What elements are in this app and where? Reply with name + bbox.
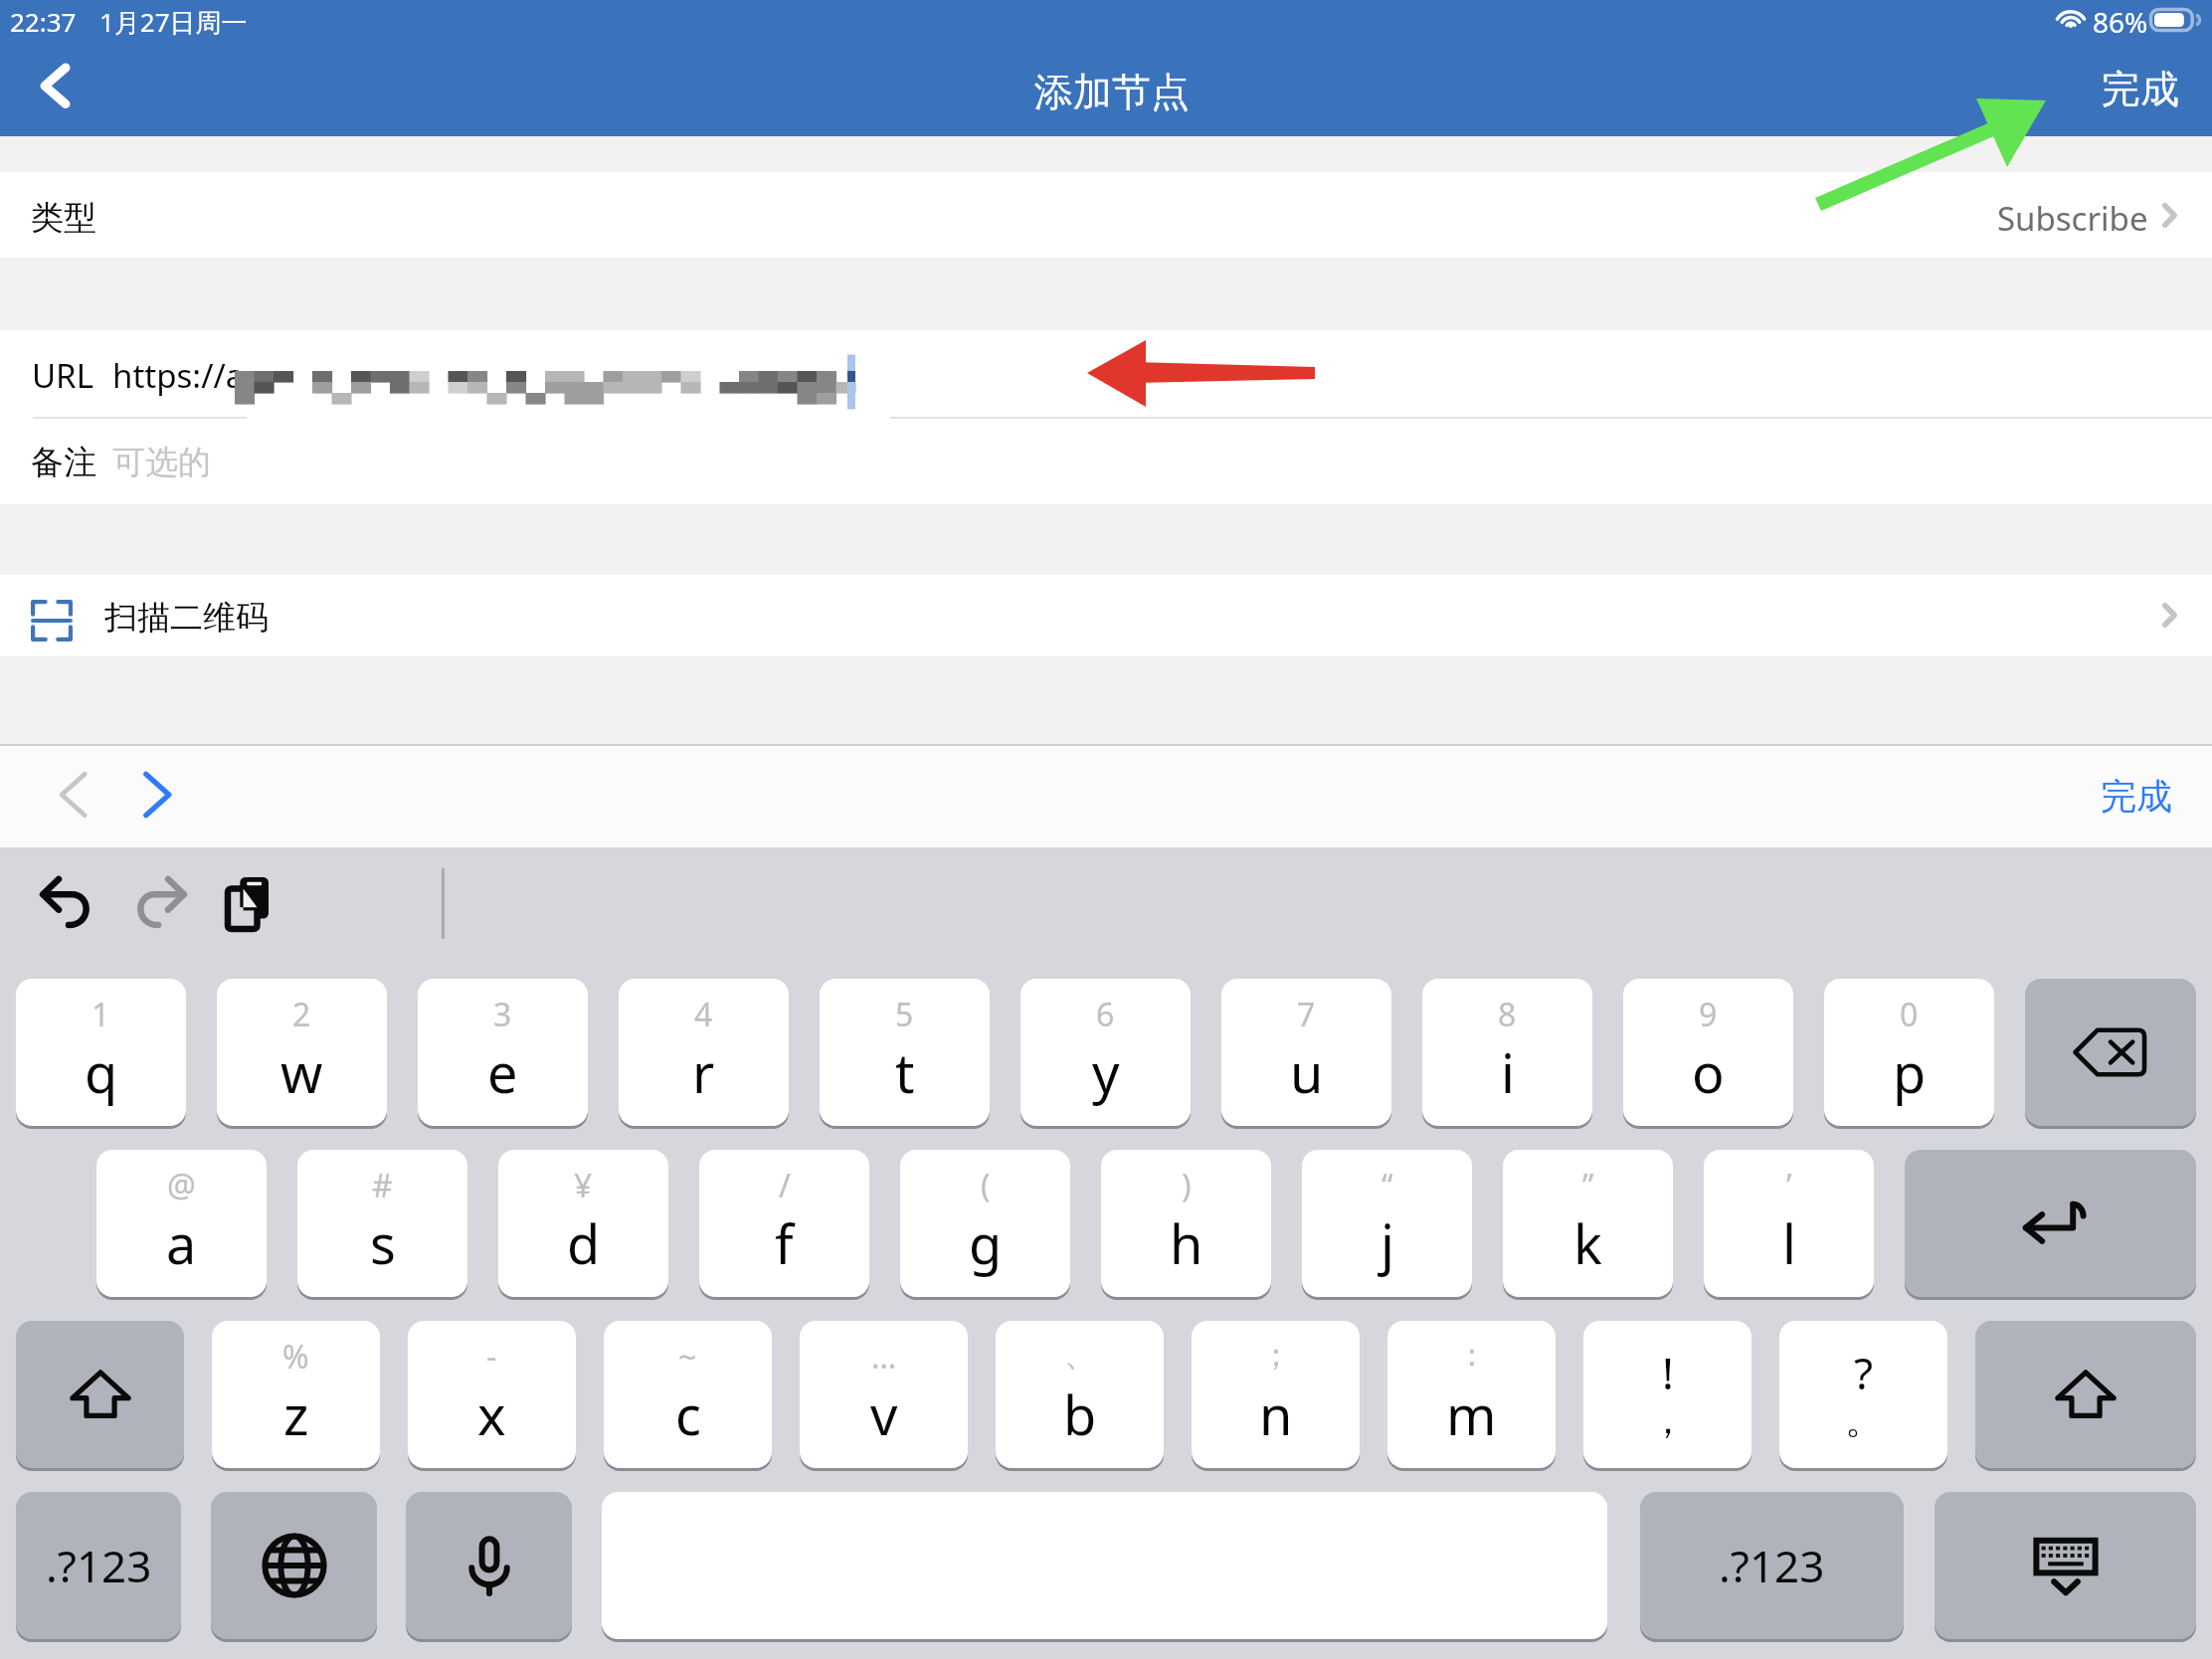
- staticText: 4: [694, 993, 713, 1036]
- button[interactable]: 4: [619, 979, 789, 1126]
- button[interactable]: Undo: [41, 877, 91, 925]
- button[interactable]: @: [96, 1150, 267, 1297]
- button[interactable]: ?: [1779, 1321, 1947, 1468]
- staticText: q: [85, 1035, 118, 1109]
- staticText: ，: [1649, 1396, 1687, 1444]
- staticText: ；: [1260, 1335, 1292, 1375]
- staticText: c: [675, 1378, 701, 1451]
- button[interactable]: ’: [1704, 1150, 1874, 1297]
- button[interactable]: 9: [1623, 979, 1793, 1126]
- staticText: 0: [1900, 993, 1919, 1036]
- staticText: URL: [32, 353, 93, 398]
- button[interactable]: ：: [1387, 1321, 1556, 1468]
- button[interactable]: shift: [1975, 1321, 2196, 1468]
- button[interactable]: Paste: [228, 877, 269, 929]
- staticText: Subscribe: [1997, 196, 2148, 241]
- other: globe: [258, 1529, 331, 1602]
- staticText: !: [1662, 1343, 1674, 1402]
- button[interactable]: shift: [16, 1321, 184, 1468]
- button[interactable]: ；: [1192, 1321, 1360, 1468]
- staticText: v: [870, 1378, 898, 1451]
- button[interactable]: 2: [217, 979, 387, 1126]
- staticText: /: [779, 1164, 791, 1207]
- staticText: 、: [1064, 1335, 1096, 1375]
- other: hidekb: [2029, 1529, 2103, 1602]
- button[interactable]: .?123: [1640, 1492, 1904, 1639]
- button[interactable]: #: [297, 1150, 467, 1297]
- staticText: %: [282, 1335, 309, 1379]
- staticText: h: [1170, 1206, 1203, 1280]
- button[interactable]: backspace: [2025, 979, 2196, 1126]
- button[interactable]: Back: [31, 56, 81, 115]
- staticText: 可选的: [112, 442, 211, 483]
- button[interactable]: 5: [820, 979, 990, 1126]
- button[interactable]: 完成: [2085, 56, 2196, 121]
- staticText: 添加节点: [1034, 68, 1190, 116]
- other: shift: [2049, 1358, 2122, 1431]
- button[interactable]: 0: [1824, 979, 1994, 1126]
- staticText: o: [1692, 1035, 1725, 1109]
- button[interactable]: (: [900, 1150, 1070, 1297]
- button[interactable]: 8: [1422, 979, 1592, 1126]
- button[interactable]: 扫描二维码: [0, 575, 2212, 656]
- staticText: 7: [1297, 993, 1316, 1036]
- staticText: 22:37: [10, 4, 77, 39]
- staticText: x: [477, 1378, 506, 1451]
- button[interactable]: mic: [406, 1492, 572, 1639]
- staticText: y: [1092, 1035, 1120, 1109]
- staticText: ~: [678, 1335, 697, 1379]
- button[interactable]: !: [1583, 1321, 1751, 1468]
- staticText: b: [1063, 1378, 1097, 1451]
- button[interactable]: 3: [418, 979, 588, 1126]
- button[interactable]: Previous field: [56, 769, 90, 821]
- staticText: …: [871, 1335, 897, 1379]
- staticText: 6: [1096, 993, 1115, 1036]
- staticText: n: [1259, 1378, 1293, 1451]
- button[interactable]: globe: [211, 1492, 377, 1639]
- staticText: g: [969, 1206, 1003, 1280]
- staticText: .?123: [46, 1536, 152, 1595]
- button[interactable]: return: [1905, 1150, 2196, 1297]
- button[interactable]: 完成: [2087, 760, 2186, 831]
- staticText: 2: [292, 993, 311, 1036]
- staticText: ¥: [574, 1164, 593, 1207]
- button[interactable]: “: [1302, 1150, 1472, 1297]
- button[interactable]: 类型: [0, 172, 2212, 258]
- staticText: s: [370, 1206, 396, 1280]
- button[interactable]: 1: [16, 979, 186, 1126]
- button[interactable]: Redo: [136, 877, 186, 925]
- staticText: p: [1893, 1035, 1927, 1109]
- staticText: (: [981, 1164, 991, 1207]
- button[interactable]: -: [408, 1321, 576, 1468]
- button[interactable]: ~: [604, 1321, 772, 1468]
- staticText: @: [167, 1164, 196, 1207]
- staticText: #: [372, 1164, 393, 1207]
- button[interactable]: hidekb: [1935, 1492, 2196, 1639]
- staticText: u: [1290, 1035, 1324, 1109]
- other: shift: [64, 1358, 137, 1431]
- button[interactable]: 6: [1020, 979, 1191, 1126]
- button[interactable]: Next field: [141, 769, 175, 821]
- staticText: f: [775, 1206, 794, 1280]
- button[interactable]: …: [800, 1321, 968, 1468]
- button[interactable]: 、: [996, 1321, 1164, 1468]
- staticText: ): [1182, 1164, 1192, 1207]
- staticText: 1月27日周一: [99, 4, 248, 40]
- staticText: i: [1501, 1035, 1515, 1109]
- button[interactable]: %: [212, 1321, 380, 1468]
- button[interactable]: ”: [1503, 1150, 1673, 1297]
- button[interactable]: ¥: [498, 1150, 668, 1297]
- staticText: e: [487, 1035, 518, 1109]
- staticText: ：: [1456, 1335, 1488, 1375]
- button[interactable]: ): [1101, 1150, 1271, 1297]
- staticText: 3: [493, 993, 512, 1036]
- staticText: “: [1382, 1164, 1393, 1207]
- button[interactable]: .?123: [16, 1492, 181, 1639]
- staticText: t: [895, 1035, 915, 1109]
- button[interactable]: 7: [1221, 979, 1391, 1126]
- other: return: [2014, 1187, 2088, 1260]
- staticText: z: [283, 1378, 309, 1451]
- staticText: d: [567, 1206, 601, 1280]
- button[interactable]: /: [699, 1150, 869, 1297]
